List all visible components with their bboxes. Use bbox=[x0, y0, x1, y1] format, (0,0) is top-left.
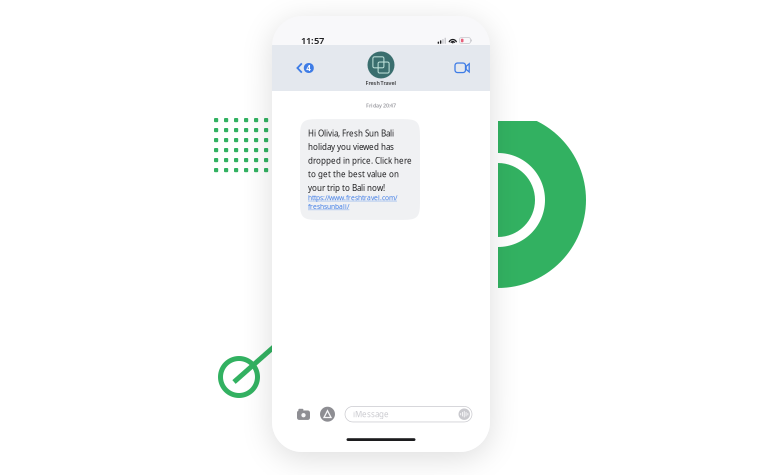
button[interactable]: FaceTime video call bbox=[449, 54, 476, 82]
staticText: Fresh Travel bbox=[365, 79, 396, 87]
staticText: 11:57 bbox=[301, 34, 324, 47]
button[interactable]: Fresh Travel bbox=[357, 47, 404, 89]
staticText: freshsunbali/ bbox=[308, 202, 349, 211]
staticText: 4 bbox=[306, 63, 311, 73]
staticText: https://www.freshtravel.com/ bbox=[308, 193, 397, 202]
staticText: Friday 20:47 bbox=[366, 102, 396, 109]
button[interactable]: Camera bbox=[297, 408, 310, 420]
button[interactable]: Apps bbox=[320, 407, 335, 422]
button[interactable]: Back, 4 unread bbox=[290, 53, 320, 82]
staticText: iMessage bbox=[353, 409, 389, 419]
button[interactable]: iMessage text field bbox=[345, 406, 472, 422]
staticText: Hi Olivia, Fresh Sun Bali holiday you vi… bbox=[308, 128, 412, 193]
